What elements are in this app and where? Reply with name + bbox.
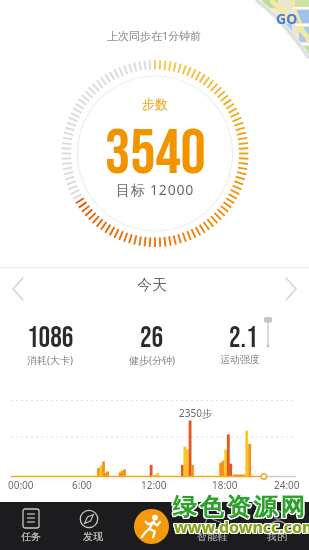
staticText: 绿色资源网 bbox=[172, 492, 307, 522]
staticText: 1086 bbox=[27, 321, 74, 356]
staticText: 2.1 bbox=[229, 321, 258, 356]
staticText: 绿色资源网 bbox=[171, 492, 306, 522]
staticText: www.downcc.com bbox=[174, 516, 309, 538]
staticText: 目标 12000 bbox=[116, 180, 195, 199]
staticText: www.downcc.com bbox=[175, 516, 309, 538]
staticText: 智能鞋 bbox=[197, 530, 227, 543]
staticText: 绿色资源网 bbox=[172, 493, 307, 523]
staticText: 绿色资源网 bbox=[170, 493, 305, 523]
staticText: 3540 bbox=[105, 116, 206, 192]
staticText: 绿色资源网 bbox=[171, 493, 306, 523]
staticText: 绿色资源网 bbox=[171, 491, 306, 521]
staticText: 健步(分钟) bbox=[129, 353, 175, 367]
staticText: 26 bbox=[140, 321, 164, 356]
staticText: www.downcc.com bbox=[173, 516, 309, 538]
staticText: www.downcc.com bbox=[173, 515, 309, 537]
button[interactable] bbox=[134, 509, 169, 544]
staticText: 我的 bbox=[267, 530, 287, 543]
staticText: 12:00 bbox=[141, 478, 167, 492]
staticText: 绿色资源网 bbox=[170, 491, 305, 521]
staticText: 步数 bbox=[142, 96, 168, 112]
button[interactable] bbox=[275, 276, 301, 302]
staticText: 任务 bbox=[21, 530, 41, 543]
button[interactable]: 智能鞋 bbox=[186, 502, 247, 550]
staticText: 发现 bbox=[83, 530, 103, 543]
button[interactable] bbox=[8, 276, 34, 302]
staticText: 18:00 bbox=[212, 478, 238, 492]
button[interactable]: GO bbox=[235, 0, 309, 74]
staticText: 6:00 bbox=[72, 478, 92, 492]
staticText: 绿色资源网 bbox=[170, 492, 305, 522]
staticText: 上次同步在1分钟前 bbox=[107, 28, 202, 43]
staticText: 24:00 bbox=[274, 478, 300, 492]
staticText: www.downcc.com bbox=[175, 515, 309, 537]
button[interactable]: 上次同步在1分钟前 bbox=[0, 28, 309, 43]
staticText: www.downcc.com bbox=[173, 517, 309, 539]
staticText: www.downcc.com bbox=[175, 517, 309, 539]
button[interactable]: 发现 bbox=[62, 502, 124, 550]
staticText: 今天 bbox=[137, 276, 167, 295]
staticText: www.downcc.com bbox=[174, 517, 309, 539]
staticText: 2350步 bbox=[179, 406, 212, 420]
button[interactable]: 我的 bbox=[247, 502, 309, 550]
staticText: 消耗(大卡) bbox=[27, 353, 73, 367]
staticText: 运动强度 bbox=[220, 353, 260, 366]
staticText: 绿色资源网 bbox=[172, 491, 307, 521]
staticText: GO bbox=[276, 9, 298, 28]
button[interactable]: 任务 bbox=[0, 502, 62, 550]
staticText: www.downcc.com bbox=[174, 515, 309, 537]
staticText: 00:00 bbox=[8, 478, 34, 492]
